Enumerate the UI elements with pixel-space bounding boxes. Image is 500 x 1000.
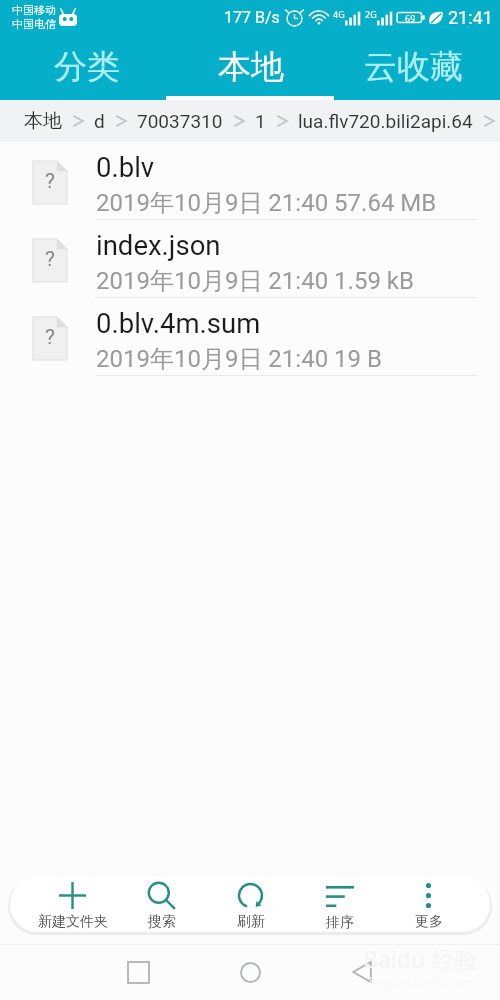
staticText: 云收藏: [364, 46, 463, 88]
staticText: ?: [45, 247, 55, 272]
button[interactable]: Back: [306, 946, 418, 998]
staticText: 更多: [415, 913, 443, 931]
button[interactable]: 云收藏: [336, 34, 491, 100]
staticText: 本地: [24, 109, 62, 133]
staticText: 新建文件夹: [38, 913, 108, 931]
staticText: 177 B/s: [224, 8, 280, 27]
staticText: 搜索: [148, 913, 176, 931]
button[interactable]: 排序: [295, 877, 384, 932]
button[interactable]: 70037310: [130, 110, 230, 132]
button[interactable]: 1: [248, 110, 273, 132]
button[interactable]: ?: [0, 298, 500, 376]
button[interactable]: 搜索: [117, 877, 206, 932]
staticText: 4G: [333, 8, 345, 20]
staticText: lua.flv720.bili2api.64: [298, 110, 473, 132]
button[interactable]: 刷新: [206, 877, 295, 932]
staticText: 2019年10月9日 21:40 1.59 kB: [96, 266, 414, 296]
staticText: 分类: [54, 46, 120, 88]
button[interactable]: ?: [0, 142, 500, 220]
button[interactable]: Recents: [82, 946, 194, 998]
staticText: Baidu 经验: [363, 943, 478, 974]
staticText: 本地: [218, 46, 284, 88]
staticText: 2G: [365, 8, 377, 20]
staticText: 69: [405, 12, 416, 24]
staticText: ?: [45, 169, 55, 194]
button[interactable]: Home: [194, 946, 306, 998]
button[interactable]: d: [87, 110, 112, 132]
button[interactable]: lua.flv720.bili2api.64: [291, 110, 480, 132]
staticText: 1: [255, 110, 266, 132]
staticText: 2019年10月9日 21:40 19 B: [96, 344, 382, 374]
staticText: 70037310: [137, 110, 223, 132]
staticText: ?: [45, 325, 55, 350]
button[interactable]: 本地: [17, 109, 69, 133]
staticText: jingyan.baidu.com: [369, 974, 473, 990]
staticText: 0.blv: [96, 151, 155, 183]
button[interactable]: 分类: [9, 34, 164, 100]
button[interactable]: ?: [0, 220, 500, 298]
staticText: 中国移动: [12, 3, 56, 17]
button[interactable]: 本地: [173, 34, 328, 100]
staticText: 排序: [326, 914, 354, 932]
button[interactable]: 更多: [384, 877, 473, 932]
staticText: 中国电信: [12, 17, 56, 31]
staticText: 0.blv.4m.sum: [96, 307, 261, 339]
button[interactable]: 新建文件夹: [28, 877, 117, 932]
staticText: d: [94, 110, 105, 132]
staticText: 刷新: [237, 913, 265, 931]
staticText: 21:41: [448, 7, 493, 28]
staticText: 2019年10月9日 21:40 57.64 MB: [96, 188, 437, 218]
staticText: index.json: [96, 229, 221, 261]
